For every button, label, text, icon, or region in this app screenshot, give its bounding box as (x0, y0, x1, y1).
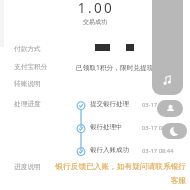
staticText: 03-17 08:44 (142, 101, 174, 109)
button[interactable]: 银行入账成功 (0, 148, 190, 171)
button[interactable]: Account (157, 100, 183, 117)
staticText: 进度说明 (14, 163, 41, 171)
button[interactable]: 支付宝积分 (0, 60, 190, 74)
staticText: 03-17 08:44 (142, 124, 174, 132)
staticText: 已领取1积分，限时兑提现券等权益 (76, 63, 181, 72)
staticText: 银行处理中 (90, 123, 123, 131)
button[interactable]: 转账说明 (0, 77, 190, 91)
staticText: 支付宝积分 (14, 63, 48, 71)
staticText: 交易成功 (0, 18, 190, 26)
staticText: 提交银行处理 (90, 100, 129, 108)
staticText: 银行反馈已入账，如有疑问请联系银行客服 (50, 162, 186, 186)
staticText: 处理进度 (14, 100, 41, 108)
staticText: 03-17 08:44 (142, 147, 174, 155)
button[interactable]: Music widget (152, 0, 183, 95)
button[interactable]: Night mode (162, 123, 187, 139)
staticText: 1.00 (1, 0, 190, 17)
button[interactable]: 银行处理中 (0, 125, 190, 148)
staticText: 转账说明 (14, 80, 41, 88)
staticText: 付款方式 (14, 45, 41, 53)
button[interactable]: 付款方式 (0, 42, 190, 56)
button[interactable]: 提交银行处理 (0, 102, 190, 125)
staticText: 银行入账成功 (90, 146, 129, 154)
